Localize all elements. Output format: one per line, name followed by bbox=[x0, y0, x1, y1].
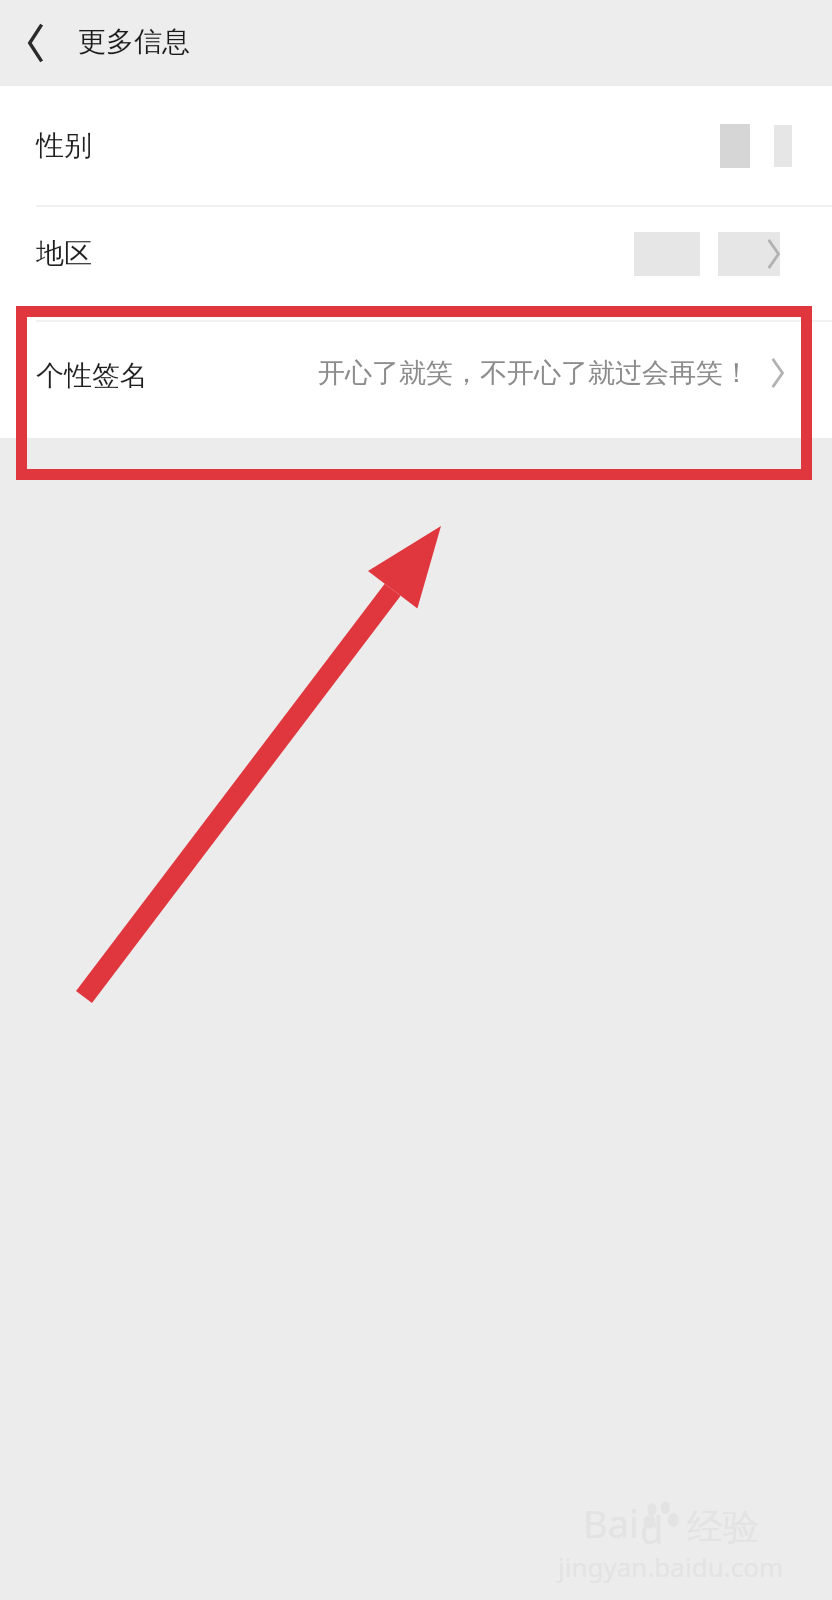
staticText: 开心了就笑，不开心了就过会再笑！ bbox=[250, 356, 750, 390]
staticText: jingyan.baidu.com bbox=[558, 1549, 784, 1584]
staticText: du bbox=[640, 1503, 686, 1549]
button[interactable]: 地区 bbox=[0, 207, 832, 300]
staticText: 个性签名 bbox=[36, 358, 148, 393]
button[interactable]: Back bbox=[12, 14, 70, 72]
staticText: 更多信息 bbox=[78, 24, 190, 59]
staticText: 性别 bbox=[36, 128, 92, 163]
button[interactable]: 个性签名 bbox=[0, 300, 832, 438]
staticText: 地区 bbox=[36, 236, 92, 271]
staticText: Bai bbox=[583, 1497, 639, 1549]
button[interactable]: 性别 bbox=[0, 86, 832, 205]
staticText: 经验 bbox=[687, 1504, 759, 1549]
